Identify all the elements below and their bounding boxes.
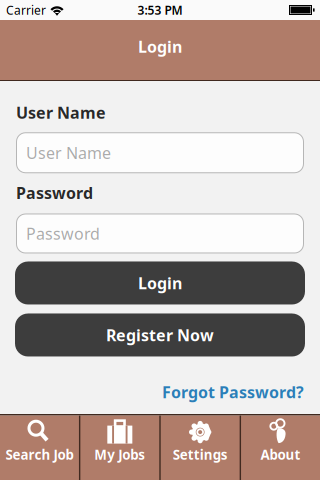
button[interactable]: Register Now <box>15 313 305 356</box>
button[interactable]: Forgot Password? <box>162 381 304 403</box>
button[interactable]: About <box>241 416 320 480</box>
staticText: Search Job <box>5 446 73 463</box>
staticText: Login <box>138 36 182 57</box>
button[interactable]: Password <box>16 213 304 253</box>
staticText: Register Now <box>106 324 214 346</box>
staticText: User Name <box>16 102 106 123</box>
button[interactable]: User Name <box>16 132 304 173</box>
button[interactable]: Login <box>15 261 305 304</box>
staticText: User Name <box>26 142 111 163</box>
staticText: 3:53 PM <box>137 2 182 18</box>
staticText: My Jobs <box>94 446 145 463</box>
staticText: Password <box>16 182 93 203</box>
staticText: Settings <box>173 446 228 463</box>
button[interactable]: My Jobs <box>80 416 159 480</box>
staticText: Carrier <box>6 2 46 18</box>
staticText: Password <box>26 223 100 244</box>
button[interactable]: Search Job <box>0 416 79 480</box>
staticText: Login <box>138 272 182 294</box>
staticText: About <box>260 446 300 463</box>
button[interactable]: Settings <box>161 416 240 480</box>
staticText: Forgot Password? <box>162 381 304 403</box>
